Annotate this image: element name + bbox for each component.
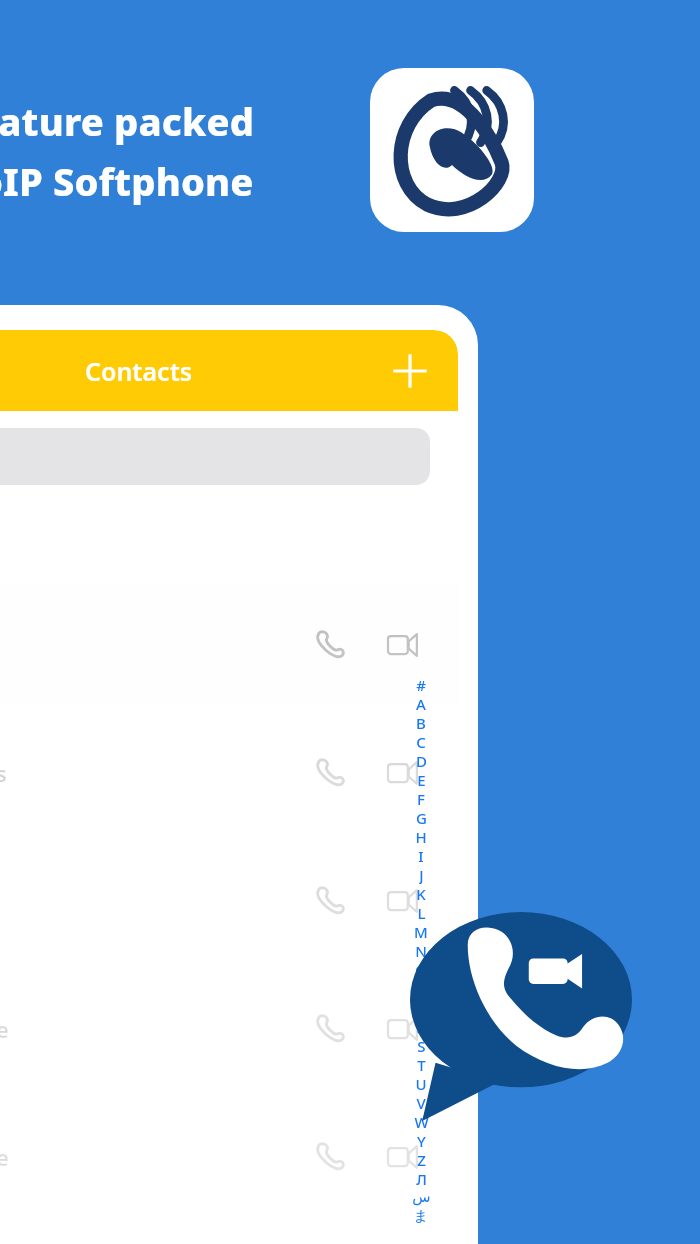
staticText: M: [414, 922, 428, 941]
button[interactable]: Voice call: [308, 622, 354, 668]
staticText: e: [0, 1142, 9, 1172]
button[interactable]: Add contact: [388, 349, 432, 393]
staticText: F: [417, 789, 425, 808]
staticText: Y: [417, 1131, 426, 1150]
staticText: W: [414, 1112, 429, 1131]
button[interactable]: Voice call: [0, 841, 458, 961]
staticText: N: [415, 941, 427, 960]
staticText: VoIP Softphone: [0, 155, 254, 207]
button[interactable]: Voice call: [308, 750, 354, 796]
staticText: R: [416, 1017, 426, 1036]
button[interactable]: Video call: [380, 1134, 426, 1180]
button[interactable]: Alphabet index: [408, 675, 434, 1226]
button[interactable]: Voice call: [308, 1006, 354, 1052]
staticText: A: [416, 694, 426, 713]
button[interactable]: Video call: [380, 1006, 426, 1052]
staticText: س: [412, 1188, 431, 1207]
staticText: Л: [416, 1169, 427, 1188]
staticText: s: [0, 758, 7, 788]
button[interactable]: Video call: [380, 750, 426, 796]
staticText: L: [417, 903, 426, 922]
button[interactable]: App icon: [370, 68, 534, 232]
button[interactable]: Video call: [380, 878, 426, 924]
button[interactable]: e: [0, 1097, 458, 1217]
staticText: I: [418, 846, 424, 865]
staticText: Feature packed: [0, 95, 255, 147]
staticText: S: [417, 1036, 426, 1055]
button[interactable]: Voice call: [0, 585, 458, 705]
staticText: J: [419, 865, 424, 884]
staticText: e: [0, 1014, 9, 1044]
button[interactable]: e: [0, 969, 458, 1089]
button[interactable]: Voice call: [308, 1134, 354, 1180]
button[interactable]: Voice call: [308, 878, 354, 924]
button[interactable]: Video call: [380, 622, 426, 668]
staticText: D: [416, 751, 427, 770]
button[interactable]: s: [0, 713, 458, 833]
staticText: H: [415, 827, 427, 846]
button[interactable]: Voice and video calling: [410, 912, 632, 1122]
staticText: B: [416, 713, 426, 732]
staticText: E: [417, 770, 426, 789]
staticText: Contacts: [85, 354, 193, 388]
staticText: ま: [413, 1207, 429, 1226]
staticText: O: [415, 960, 427, 979]
staticText: C: [416, 732, 426, 751]
staticText: U: [415, 1074, 427, 1093]
staticText: K: [416, 884, 426, 903]
staticText: V: [416, 1093, 426, 1112]
staticText: G: [416, 808, 427, 827]
staticText: Z: [417, 1150, 426, 1169]
staticText: T: [417, 1055, 426, 1074]
staticText: #: [416, 675, 426, 694]
